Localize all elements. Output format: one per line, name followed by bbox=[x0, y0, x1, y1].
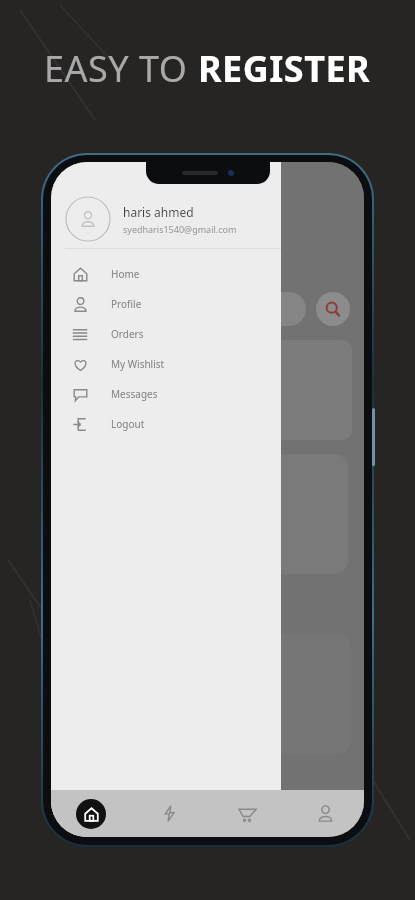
button[interactable]: Home bbox=[51, 790, 130, 837]
button[interactable]: Messages bbox=[51, 379, 281, 409]
staticText: syedharis1540@gmail.com bbox=[123, 223, 237, 235]
button[interactable]: Couples bbox=[65, 634, 350, 754]
staticText: Logout bbox=[111, 417, 281, 431]
staticText: Orders bbox=[111, 327, 281, 341]
button[interactable] bbox=[67, 454, 348, 574]
button[interactable]: My Wishlist bbox=[51, 349, 281, 379]
staticText: My Wishlist bbox=[111, 357, 281, 371]
button[interactable]: Flash deals bbox=[130, 790, 208, 837]
button[interactable] bbox=[65, 292, 306, 326]
staticText: REGISTER bbox=[198, 44, 371, 93]
staticText: Home bbox=[111, 267, 281, 281]
button[interactable]: haris ahmed bbox=[65, 190, 271, 248]
staticText: haris ahmed bbox=[123, 204, 194, 220]
button[interactable]: Orders bbox=[51, 319, 281, 349]
button[interactable]: Profile bbox=[51, 289, 281, 319]
button[interactable]: Top Sellers bbox=[63, 340, 352, 440]
staticText: EASY TO bbox=[44, 44, 198, 93]
staticText: Messages bbox=[111, 387, 281, 401]
button[interactable]: Search bbox=[316, 292, 350, 326]
button[interactable]: Home bbox=[51, 259, 281, 289]
button[interactable]: Cart bbox=[208, 790, 286, 837]
button[interactable]: Account bbox=[286, 790, 364, 837]
button[interactable]: Logout bbox=[51, 409, 281, 439]
staticText: Profile bbox=[111, 297, 281, 311]
